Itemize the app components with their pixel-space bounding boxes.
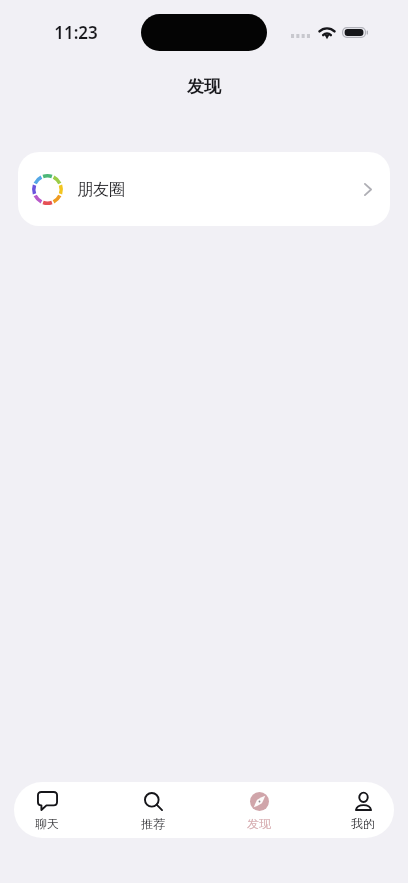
button[interactable]: Profile xyxy=(325,782,394,838)
staticText: 聊天 xyxy=(35,816,59,831)
staticText: 11:23 xyxy=(54,21,98,44)
staticText: 朋友圈 xyxy=(77,180,125,200)
staticText: 发现 xyxy=(247,816,271,831)
button[interactable]: Discover xyxy=(221,782,297,838)
button[interactable]: 朋友圈 xyxy=(18,152,390,226)
button[interactable]: Recommend xyxy=(115,782,191,838)
button[interactable]: Chat xyxy=(14,782,85,838)
staticText: 发现 xyxy=(187,76,221,97)
staticText: 推荐 xyxy=(141,816,165,831)
staticText: 我的 xyxy=(351,816,375,831)
